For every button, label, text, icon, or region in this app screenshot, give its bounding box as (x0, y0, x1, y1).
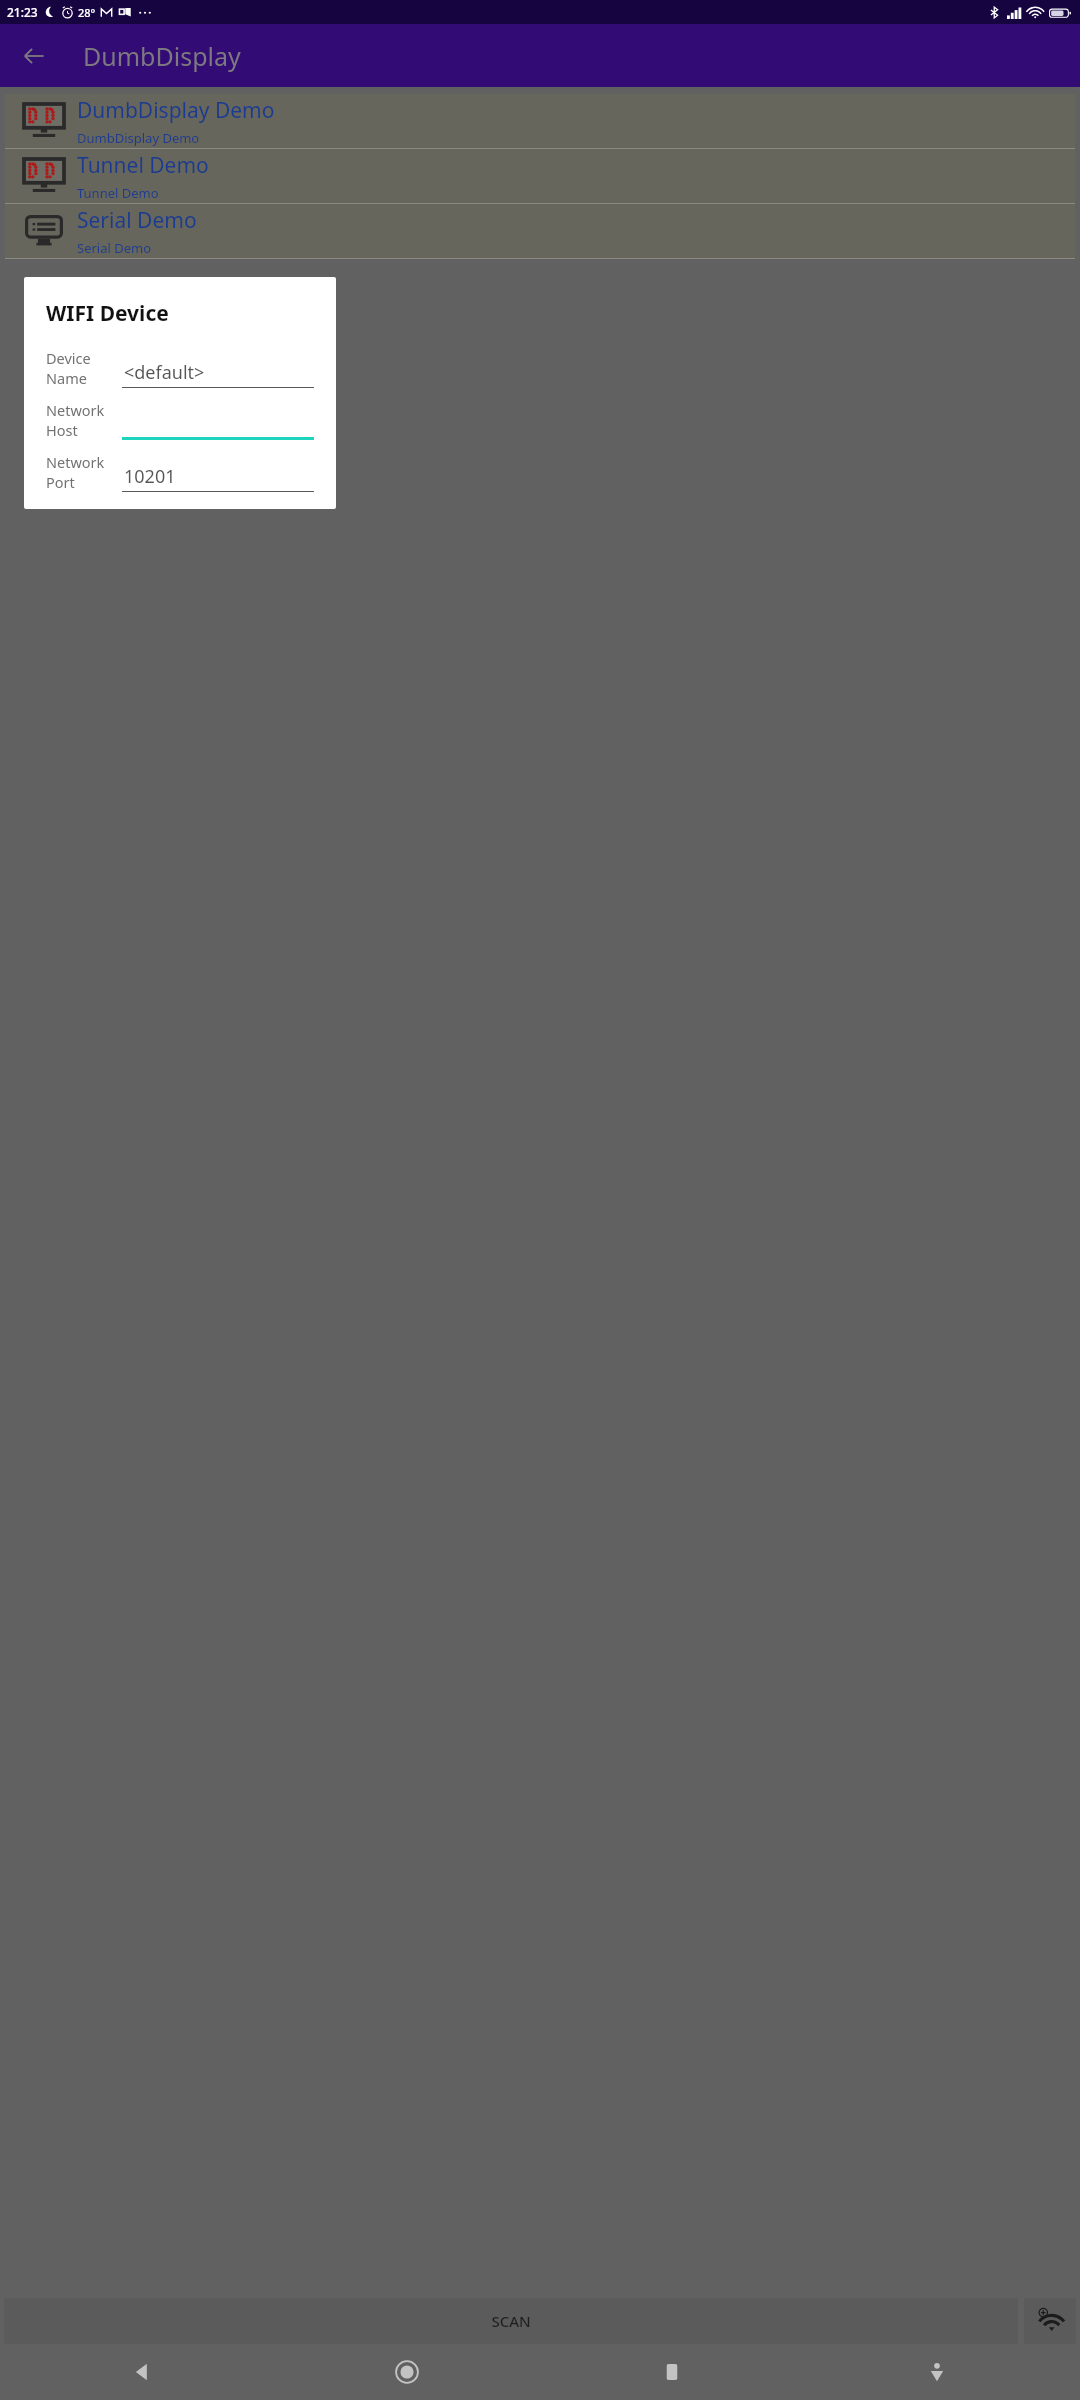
button[interactable]: Serial Demo (5, 204, 1075, 258)
staticText: <default> (124, 360, 205, 384)
staticText: Tunnel Demo (77, 151, 209, 180)
button[interactable]: DumbDisplay Demo (5, 94, 1075, 148)
button[interactable]: Back (10, 32, 58, 80)
staticText: Network Host (46, 400, 122, 440)
staticText: Serial Demo (77, 206, 197, 235)
staticText: Device Name (46, 348, 122, 388)
button[interactable]: Device Name (46, 348, 314, 388)
button[interactable]: Hide keyboard (909, 2344, 965, 2400)
staticText: 21:23 (7, 4, 38, 20)
staticText: DumbDisplay Demo (77, 129, 200, 147)
staticText: Network Port (46, 452, 122, 492)
staticText: DumbDisplay (83, 39, 241, 73)
button[interactable]: Recents (644, 2344, 700, 2400)
staticText: 10201 (124, 464, 176, 488)
staticText: Tunnel Demo (77, 184, 159, 202)
staticText: WIFI Device (46, 299, 169, 328)
button[interactable]: Network Port (46, 452, 314, 492)
staticText: DumbDisplay Demo (77, 96, 275, 125)
staticText: Serial Demo (77, 239, 152, 257)
button[interactable]: Add WiFi device (1024, 2298, 1076, 2344)
button[interactable]: Network Host (46, 400, 314, 440)
button[interactable]: Home (379, 2344, 435, 2400)
button[interactable]: Back (114, 2344, 170, 2400)
staticText: 28° (78, 5, 96, 20)
button[interactable]: Tunnel Demo (5, 149, 1075, 203)
staticText: SCAN (491, 2311, 531, 2331)
